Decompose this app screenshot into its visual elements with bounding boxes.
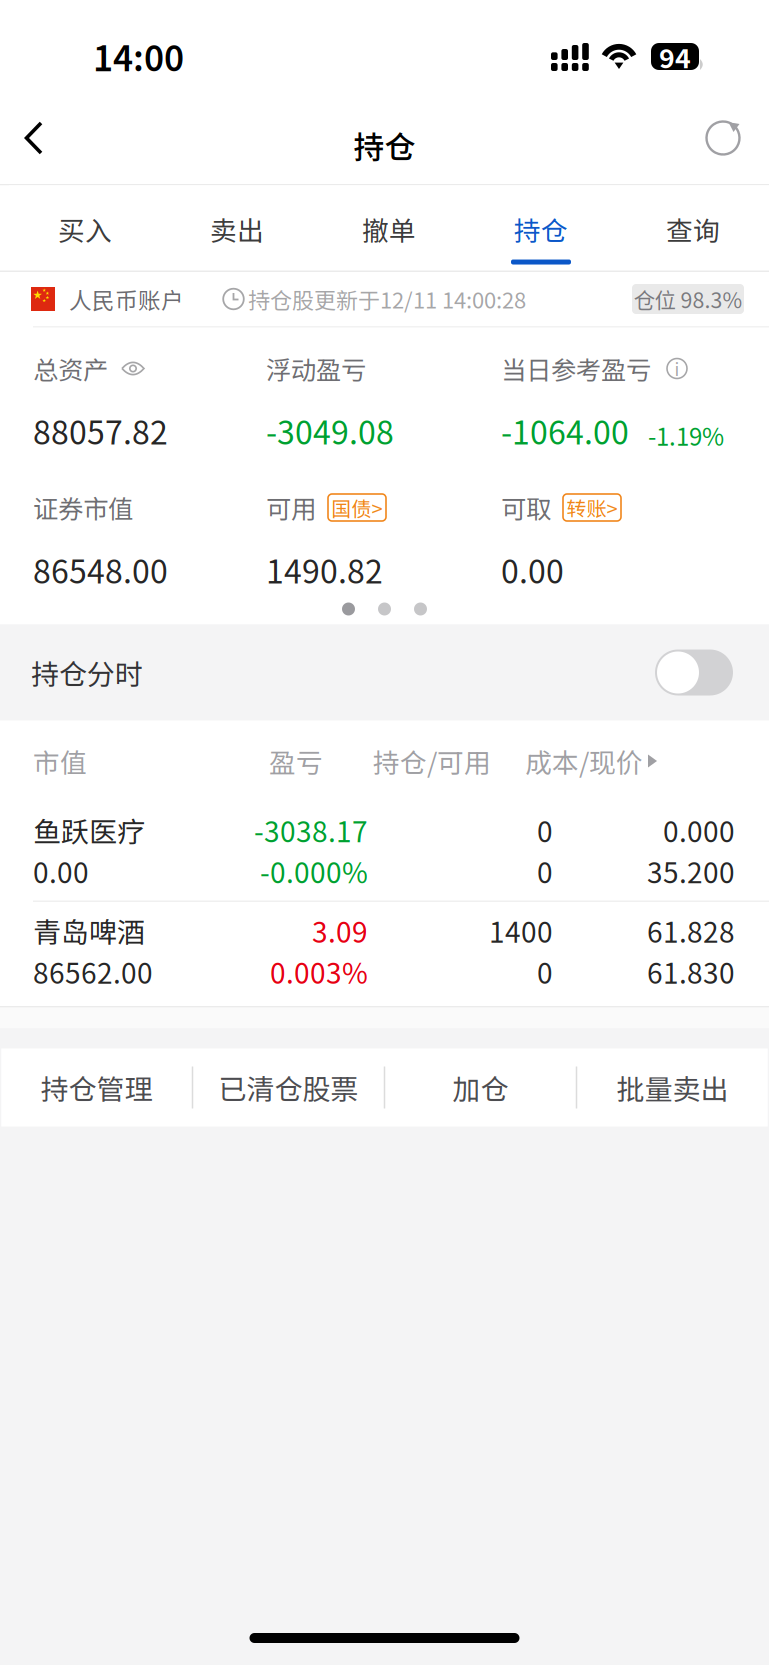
staticText: 3.09 [312, 910, 368, 951]
staticText: -0.000% [260, 851, 368, 891]
staticText: 成本/现价 [525, 742, 643, 780]
button[interactable]: 卖出 [161, 185, 313, 270]
button[interactable]: 持仓管理 [1, 1048, 192, 1126]
staticText: 可用 [266, 489, 316, 526]
staticText: 卖出 [210, 210, 264, 248]
staticText: -3049.08 [266, 407, 394, 454]
button[interactable]: 撤单 [313, 185, 465, 270]
button[interactable]: 青岛啤酒 [0, 902, 769, 1001]
staticText: 94 [659, 37, 691, 76]
staticText: 批量卖出 [616, 1067, 728, 1108]
button[interactable]: 加仓 [385, 1048, 576, 1126]
staticText: 可取 [501, 489, 551, 526]
staticText: 加仓 [452, 1067, 508, 1108]
button[interactable]: 批量卖出 [577, 1048, 768, 1126]
staticText: 1490.82 [266, 546, 383, 593]
staticText: 转账> [566, 493, 617, 522]
staticText: 1400 [489, 910, 553, 951]
staticText: 浮动盈亏 [266, 350, 366, 387]
staticText: 持仓股更新于12/11 14:00:28 [248, 283, 526, 315]
staticText: 当日参考盈亏 [501, 350, 651, 387]
staticText: 35.200 [647, 851, 735, 891]
staticText: 86562.00 [33, 951, 153, 992]
staticText: 鱼跃医疗 [33, 810, 145, 850]
staticText: 仓位 98.3% [633, 284, 742, 314]
staticText: -1.19% [648, 418, 724, 453]
staticText: 0 [537, 810, 553, 850]
staticText: -1064.00 [501, 407, 629, 454]
staticText: 持仓 [353, 123, 415, 167]
staticText: 0.00 [33, 851, 89, 891]
staticText: 查询 [666, 210, 720, 248]
button[interactable]: Back [0, 92, 86, 184]
button[interactable]: 已清仓股票 [193, 1048, 384, 1126]
staticText: 市值 [33, 742, 87, 780]
staticText: 持仓管理 [40, 1067, 152, 1108]
staticText: 0.00 [501, 546, 564, 593]
staticText: 0.003% [270, 951, 368, 992]
button[interactable]: 持仓分时 [655, 649, 733, 695]
staticText: 证券市值 [33, 489, 133, 526]
button[interactable]: 持仓 [465, 185, 617, 270]
staticText: 已清仓股票 [218, 1067, 358, 1108]
staticText: 买入 [58, 210, 112, 248]
staticText: 持仓分时 [31, 652, 143, 693]
staticText: 持仓/可用 [373, 742, 491, 780]
staticText: 0 [537, 951, 553, 992]
button[interactable]: Refresh [683, 92, 769, 184]
staticText: i [674, 356, 679, 381]
button[interactable]: 买入 [9, 185, 161, 270]
staticText: 0 [537, 851, 553, 891]
staticText: 61.828 [647, 910, 735, 951]
staticText: 盈亏 [269, 742, 323, 780]
staticText: 持仓 [514, 210, 568, 248]
staticText: -3038.17 [254, 810, 368, 850]
staticText: 撤单 [362, 210, 416, 248]
staticText: 总资产 [33, 350, 108, 387]
staticText: 国债> [331, 493, 382, 522]
staticText: 青岛啤酒 [33, 910, 145, 951]
button[interactable]: 查询 [617, 185, 769, 270]
staticText: 14:00 [93, 31, 184, 81]
staticText: 86548.00 [33, 546, 168, 593]
staticText: 人民币账户 [69, 283, 184, 315]
staticText: 0.000 [663, 810, 735, 850]
button[interactable]: 鱼跃医疗 [0, 801, 769, 900]
staticText: 88057.82 [33, 407, 168, 454]
staticText: 61.830 [647, 951, 735, 992]
